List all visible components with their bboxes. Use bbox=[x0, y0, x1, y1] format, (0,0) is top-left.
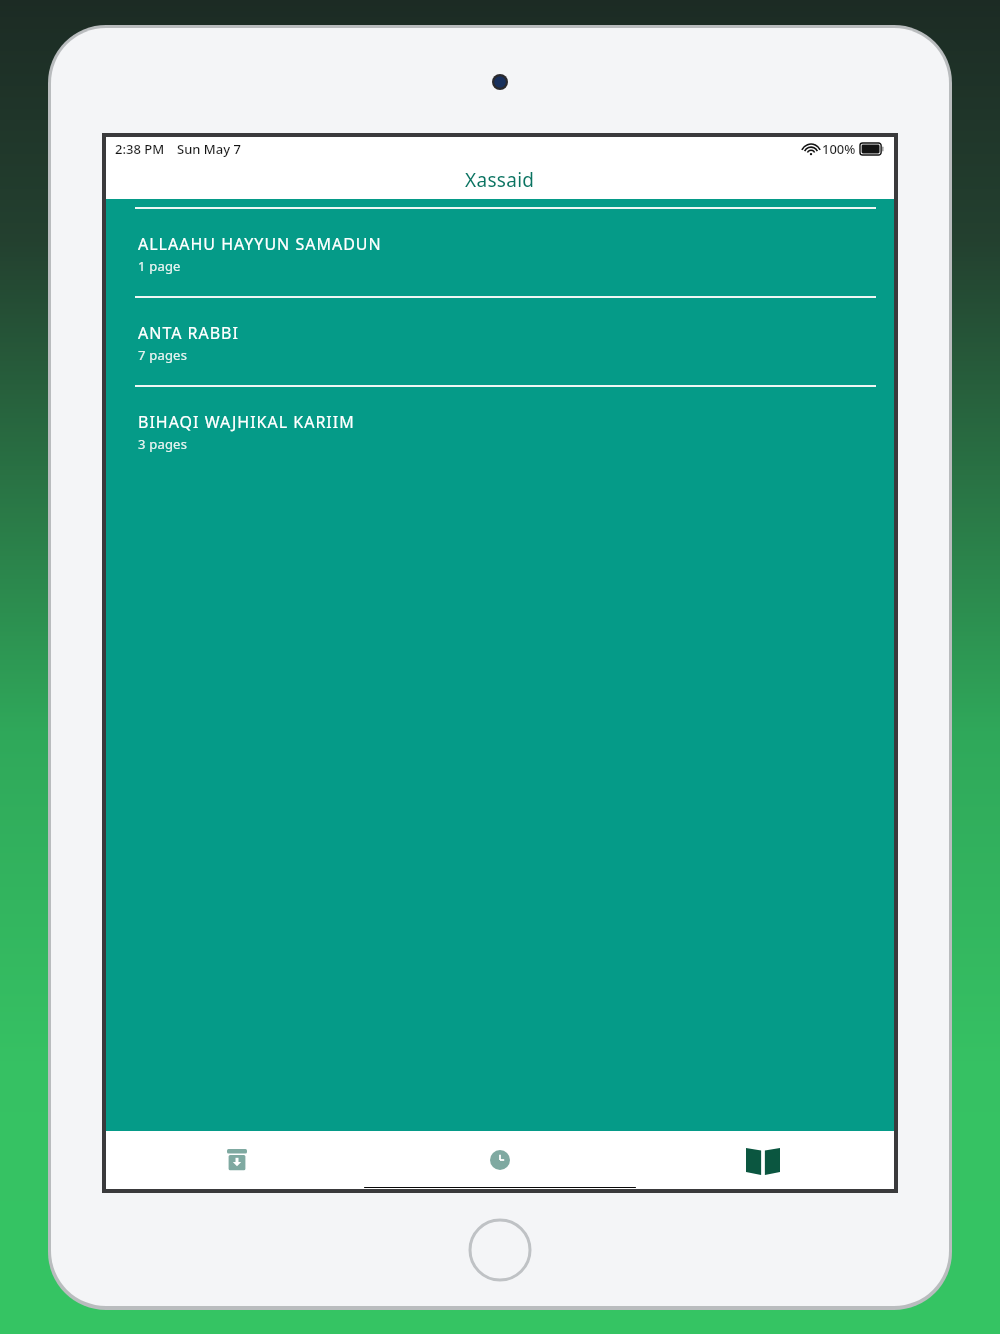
staticText: 3 pages bbox=[138, 435, 188, 453]
staticText: 2:38 PM bbox=[115, 140, 165, 158]
staticText: 100% bbox=[822, 140, 856, 158]
button[interactable]: Recent bbox=[368, 1131, 631, 1188]
staticText: ANTA RABBI bbox=[138, 322, 239, 344]
staticText: 1 page bbox=[138, 257, 181, 275]
button[interactable]: BIHAQI WAJHIKAL KARIIM bbox=[106, 377, 894, 466]
button[interactable]: Downloads bbox=[106, 1131, 368, 1188]
staticText: BIHAQI WAJHIKAL KARIIM bbox=[138, 411, 355, 433]
button[interactable]: ALLAAHU HAYYUN SAMADUN bbox=[106, 199, 894, 288]
button[interactable]: Library bbox=[631, 1131, 894, 1188]
staticText: 7 pages bbox=[138, 346, 188, 364]
staticText: ALLAAHU HAYYUN SAMADUN bbox=[138, 233, 382, 255]
staticText: Sun May 7 bbox=[177, 140, 241, 158]
staticText: Xassaid bbox=[465, 167, 535, 193]
button[interactable]: ANTA RABBI bbox=[106, 288, 894, 377]
